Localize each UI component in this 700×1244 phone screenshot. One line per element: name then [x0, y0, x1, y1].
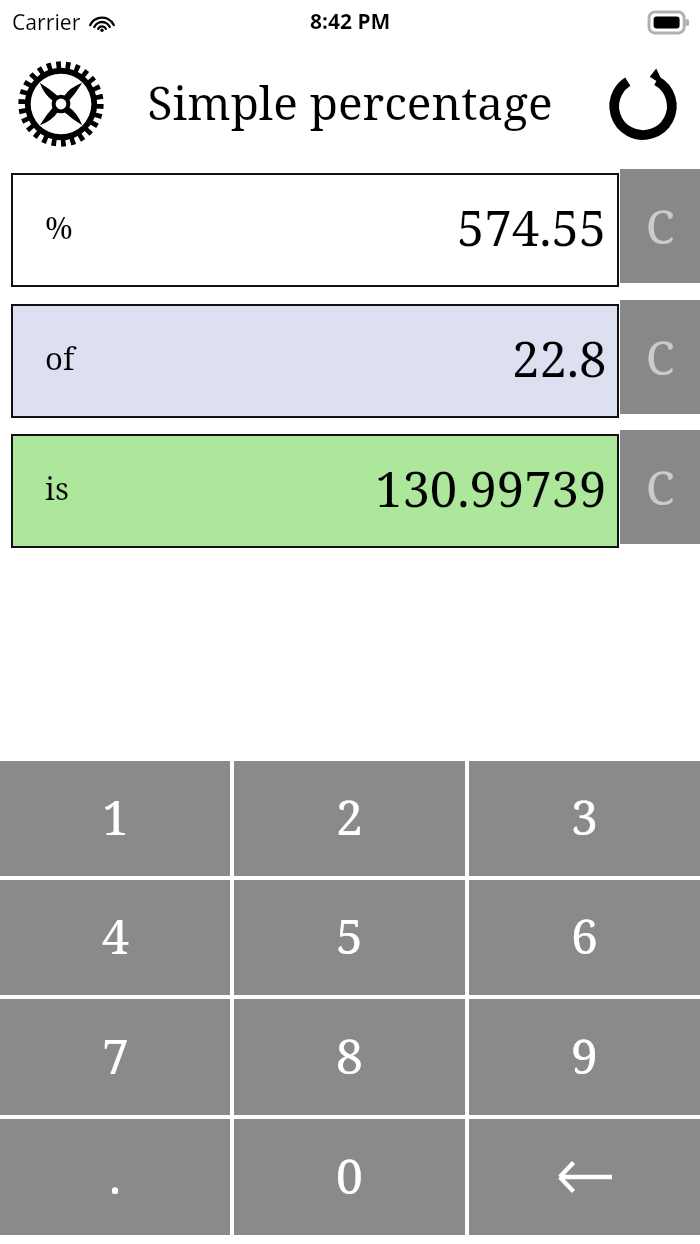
button[interactable]: 6 [469, 880, 700, 995]
button[interactable]: Reset [600, 61, 686, 147]
button[interactable]: 0 [234, 1119, 465, 1235]
button[interactable]: 9 [469, 999, 700, 1115]
staticText: 8 [336, 1023, 363, 1088]
staticText: is [45, 467, 69, 509]
button[interactable]: 1 [0, 761, 230, 876]
button[interactable]: % [11, 173, 619, 287]
button[interactable]: C [620, 169, 700, 283]
staticText: C [646, 456, 675, 519]
staticText: 5 [336, 903, 363, 968]
staticText: 3 [571, 784, 598, 849]
staticText: . [109, 1143, 122, 1208]
staticText: % [45, 206, 73, 248]
button[interactable]: is [11, 434, 619, 548]
staticText: of [45, 337, 75, 379]
staticText: 0 [336, 1143, 363, 1208]
staticText: 9 [571, 1023, 598, 1088]
button[interactable]: C [620, 300, 700, 414]
staticText: C [646, 326, 675, 389]
staticText: C [646, 195, 675, 258]
button[interactable]: Settings [12, 55, 110, 153]
button[interactable]: 2 [234, 761, 465, 876]
staticText: 574.55 [457, 194, 607, 261]
staticText: 8:42 PM [310, 7, 391, 36]
staticText: 4 [102, 903, 129, 968]
button[interactable]: . [0, 1119, 230, 1235]
button[interactable]: 8 [234, 999, 465, 1115]
staticText: 7 [102, 1023, 129, 1088]
button[interactable]: 4 [0, 880, 230, 995]
button[interactable]: C [620, 430, 700, 544]
staticText: 6 [571, 903, 598, 968]
button[interactable]: Backspace [469, 1119, 700, 1235]
button[interactable]: 5 [234, 880, 465, 995]
staticText: 22.8 [512, 325, 607, 392]
button[interactable]: of [11, 304, 619, 418]
staticText: 2 [336, 784, 363, 849]
staticText: 130.99739 [375, 455, 607, 522]
staticText: 1 [102, 784, 129, 849]
button[interactable]: 7 [0, 999, 230, 1115]
button[interactable]: 3 [469, 761, 700, 876]
staticText: Simple percentage [147, 71, 553, 134]
staticText: Carrier [12, 8, 81, 37]
